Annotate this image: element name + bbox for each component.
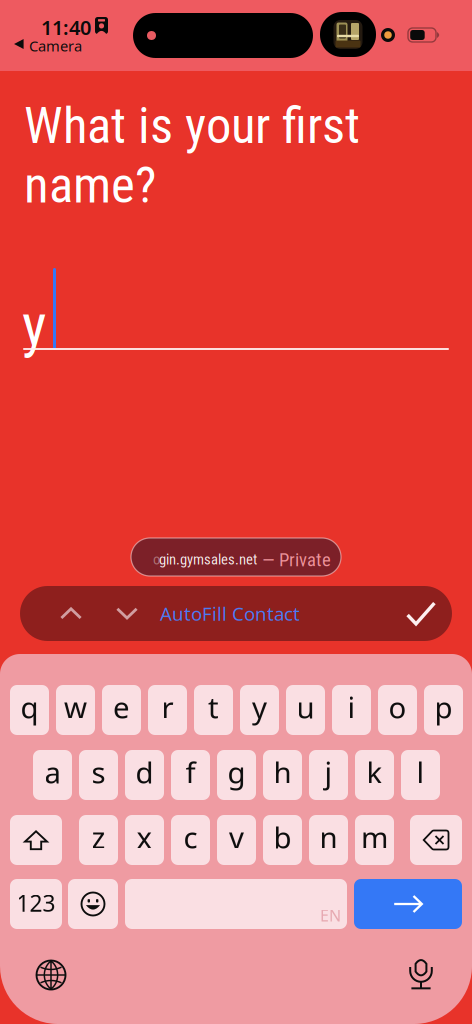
staticText: e — [113, 687, 130, 726]
staticText: i — [347, 687, 355, 726]
staticText: f — [185, 752, 195, 791]
staticText: Camera — [29, 36, 82, 55]
staticText: z — [91, 817, 105, 856]
button[interactable]: Delete — [410, 815, 462, 865]
button[interactable]: e — [102, 685, 141, 735]
button[interactable]: f — [171, 750, 210, 800]
button[interactable]: Next keyboard — [28, 952, 74, 998]
staticText: c — [183, 817, 197, 856]
button[interactable]: Shift — [10, 815, 62, 865]
staticText: 123 — [16, 888, 55, 918]
button[interactable]: space — [125, 879, 347, 929]
staticText: k — [366, 752, 382, 791]
staticText: g — [227, 752, 245, 791]
staticText: j — [324, 752, 332, 791]
staticText: y — [22, 291, 46, 360]
button[interactable]: l — [401, 750, 440, 800]
button[interactable]: d — [125, 750, 164, 800]
button[interactable]: p — [424, 685, 463, 735]
button[interactable]: g — [217, 750, 256, 800]
staticText: What is your first name? — [24, 96, 360, 215]
button[interactable]: t — [194, 685, 233, 735]
staticText: EN — [320, 905, 341, 926]
staticText: h — [273, 752, 291, 791]
staticText: t — [208, 687, 219, 726]
staticText: gin.gymsales.net — [159, 551, 257, 568]
staticText: u — [296, 687, 314, 726]
staticText: a — [44, 752, 60, 791]
button[interactable]: Done — [393, 586, 449, 641]
button[interactable]: j — [309, 750, 348, 800]
staticText: r — [161, 687, 173, 726]
staticText: x — [136, 817, 152, 856]
button[interactable]: k — [355, 750, 394, 800]
staticText: m — [361, 817, 388, 856]
button[interactable]: n — [309, 815, 348, 865]
button[interactable]: o — [378, 685, 417, 735]
button[interactable]: AutoFill Contact — [135, 586, 325, 641]
button[interactable]: c — [171, 815, 210, 865]
button[interactable]: r — [148, 685, 187, 735]
button[interactable]: x — [125, 815, 164, 865]
button[interactable]: i — [332, 685, 371, 735]
button[interactable]: a — [33, 750, 72, 800]
staticText: o — [388, 687, 406, 726]
button[interactable]: Previous field — [46, 586, 96, 641]
staticText: d — [135, 752, 153, 791]
button[interactable]: 123 — [10, 879, 62, 929]
staticText: — Private — [262, 549, 331, 571]
button[interactable]: u — [286, 685, 325, 735]
staticText: b — [273, 817, 291, 856]
button[interactable]: Next field — [102, 586, 152, 641]
staticText: q — [20, 687, 38, 726]
staticText: AutoFill Contact — [160, 601, 300, 626]
button[interactable]: m — [355, 815, 394, 865]
button[interactable]: q — [10, 685, 49, 735]
button[interactable]: y — [240, 685, 279, 735]
button[interactable]: w — [56, 685, 95, 735]
button[interactable]: v — [217, 815, 256, 865]
staticText: p — [434, 687, 452, 726]
staticText: 11:40 — [41, 14, 91, 41]
staticText: v — [229, 817, 244, 856]
button[interactable]: z — [79, 815, 118, 865]
staticText: s — [91, 752, 105, 791]
button[interactable]: b — [263, 815, 302, 865]
staticText: o — [153, 551, 160, 568]
button[interactable]: Emoji — [68, 879, 118, 929]
staticText: y — [252, 687, 267, 726]
staticText: l — [416, 752, 424, 791]
button[interactable]: Go — [354, 879, 462, 929]
staticText: w — [64, 687, 87, 726]
button[interactable]: h — [263, 750, 302, 800]
button[interactable]: Dictation — [398, 951, 444, 997]
button[interactable]: s — [79, 750, 118, 800]
staticText: n — [319, 817, 337, 856]
